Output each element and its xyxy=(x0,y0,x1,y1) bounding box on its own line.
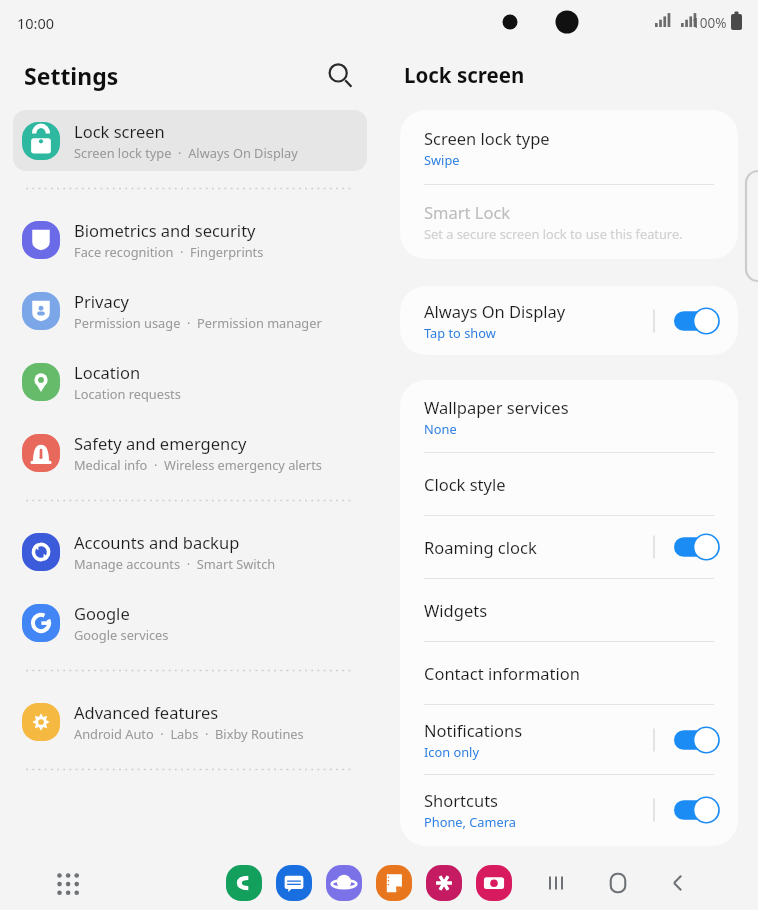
staticText: Google xyxy=(74,602,130,624)
staticText: Biometrics and security xyxy=(74,219,256,241)
button[interactable]: Always On Display xyxy=(400,286,738,355)
button[interactable]: Advanced features xyxy=(13,691,367,752)
staticText: Shortcuts xyxy=(424,789,498,811)
staticText: Roaming clock xyxy=(424,536,537,558)
staticText: Wallpaper services xyxy=(424,396,569,418)
staticText: Face recognition · Fingerprints xyxy=(74,243,264,260)
staticText: Screen lock type · Always On Display xyxy=(74,144,298,161)
staticText: None xyxy=(424,420,457,437)
staticText: Lock screen xyxy=(74,120,165,142)
button[interactable]: Camera xyxy=(476,865,512,901)
button[interactable]: Notifications toggle xyxy=(674,726,720,754)
button[interactable]: Privacy xyxy=(13,280,367,341)
staticText: Manage accounts · Smart Switch xyxy=(74,555,276,572)
button[interactable]: Roaming clock xyxy=(400,516,738,578)
button[interactable]: Internet xyxy=(326,865,362,901)
button[interactable]: Back xyxy=(658,863,698,903)
button[interactable]: Always On Display toggle xyxy=(674,307,720,335)
button[interactable]: Accounts and backup xyxy=(13,521,367,582)
staticText: Settings xyxy=(24,60,320,91)
staticText: Location requests xyxy=(74,385,181,402)
button[interactable]: Shortcuts toggle xyxy=(674,796,720,824)
button[interactable]: Smart Lock xyxy=(400,185,738,259)
button[interactable]: Widgets xyxy=(400,579,738,641)
button[interactable]: Wallpaper services xyxy=(400,380,738,452)
staticText: Tap to show xyxy=(424,324,496,341)
staticText: Icon only xyxy=(424,743,479,760)
staticText: Smart Lock xyxy=(424,201,511,223)
button[interactable]: Lock screen xyxy=(13,110,367,171)
button[interactable]: Safety and emergency xyxy=(13,422,367,483)
button[interactable]: Shortcuts xyxy=(400,775,738,846)
button[interactable]: Google xyxy=(13,592,367,653)
staticText: Screen lock type xyxy=(424,127,550,149)
staticText: Privacy xyxy=(74,290,130,312)
staticText: Google services xyxy=(74,626,169,643)
staticText: Set a secure screen lock to use this fea… xyxy=(424,225,683,242)
button[interactable]: Phone xyxy=(226,865,262,901)
staticText: Advanced features xyxy=(74,701,219,723)
button[interactable]: Galaxy Store xyxy=(426,865,462,901)
staticText: Permission usage · Permission manager xyxy=(74,314,322,331)
staticText: 100% xyxy=(692,14,727,32)
button[interactable]: Clock style xyxy=(400,453,738,515)
staticText: Phone, Camera xyxy=(424,813,516,830)
staticText: Widgets xyxy=(424,599,488,621)
button[interactable]: Roaming clock toggle xyxy=(674,533,720,561)
staticText: Contact information xyxy=(424,662,580,684)
staticText: Safety and emergency xyxy=(74,432,247,454)
button[interactable]: Notifications xyxy=(400,705,738,774)
staticText: Accounts and backup xyxy=(74,531,240,553)
button[interactable]: Messages xyxy=(276,865,312,901)
staticText: Clock style xyxy=(424,473,506,495)
staticText: Notifications xyxy=(424,719,523,741)
button[interactable]: Screen lock type xyxy=(400,110,738,184)
staticText: Swipe xyxy=(424,151,460,168)
staticText: 10:00 xyxy=(17,13,55,33)
staticText: Location xyxy=(74,361,141,383)
button[interactable]: Notes xyxy=(376,865,412,901)
staticText: Always On Display xyxy=(424,300,566,322)
staticText: Android Auto · Labs · Bixby Routines xyxy=(74,725,304,742)
button[interactable]: Recents xyxy=(538,863,578,903)
button[interactable]: Home xyxy=(598,863,638,903)
button[interactable]: Location xyxy=(13,351,367,412)
button[interactable]: Contact information xyxy=(400,642,738,704)
button[interactable]: Search xyxy=(320,55,360,95)
button[interactable]: Biometrics and security xyxy=(13,209,367,270)
staticText: Lock screen xyxy=(404,61,525,89)
staticText: Medical info · Wireless emergency alerts xyxy=(74,456,322,473)
button[interactable]: Apps xyxy=(50,866,84,900)
